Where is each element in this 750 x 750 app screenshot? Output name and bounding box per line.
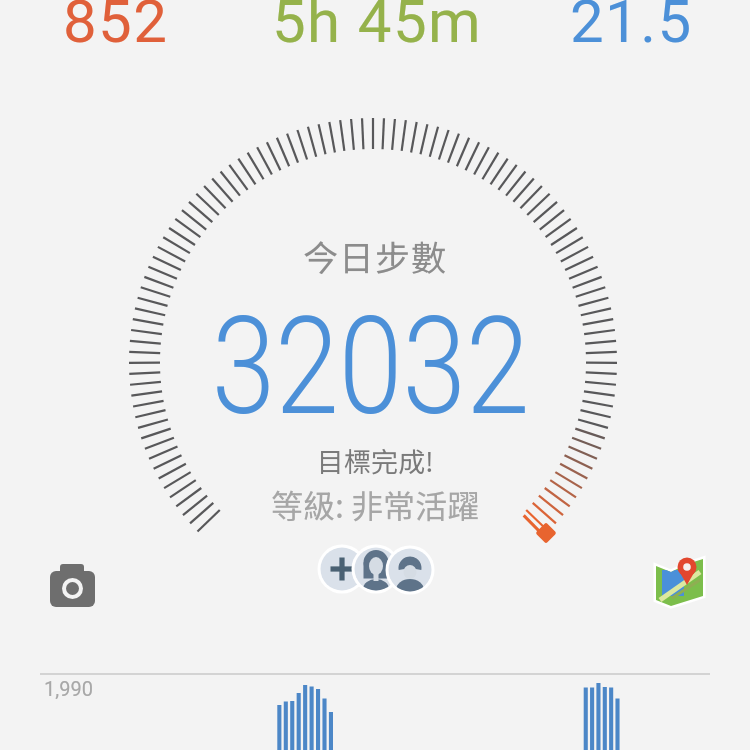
staticText: 等級: 非常活躍: [271, 481, 480, 527]
button[interactable]: [555, 0, 705, 55]
staticText: 5h 45m: [272, 0, 483, 56]
button[interactable]: [648, 550, 712, 610]
button[interactable]: [280, 0, 470, 55]
button[interactable]: [317, 544, 435, 594]
staticText: 1,990: [44, 677, 93, 700]
staticText: 目標完成!: [317, 441, 434, 480]
button[interactable]: [40, 0, 195, 55]
button[interactable]: [40, 558, 104, 618]
staticText: 32032: [212, 287, 530, 427]
staticText: 852: [63, 0, 169, 56]
staticText: 21.5: [570, 0, 693, 56]
staticText: 今日步數: [303, 230, 448, 281]
